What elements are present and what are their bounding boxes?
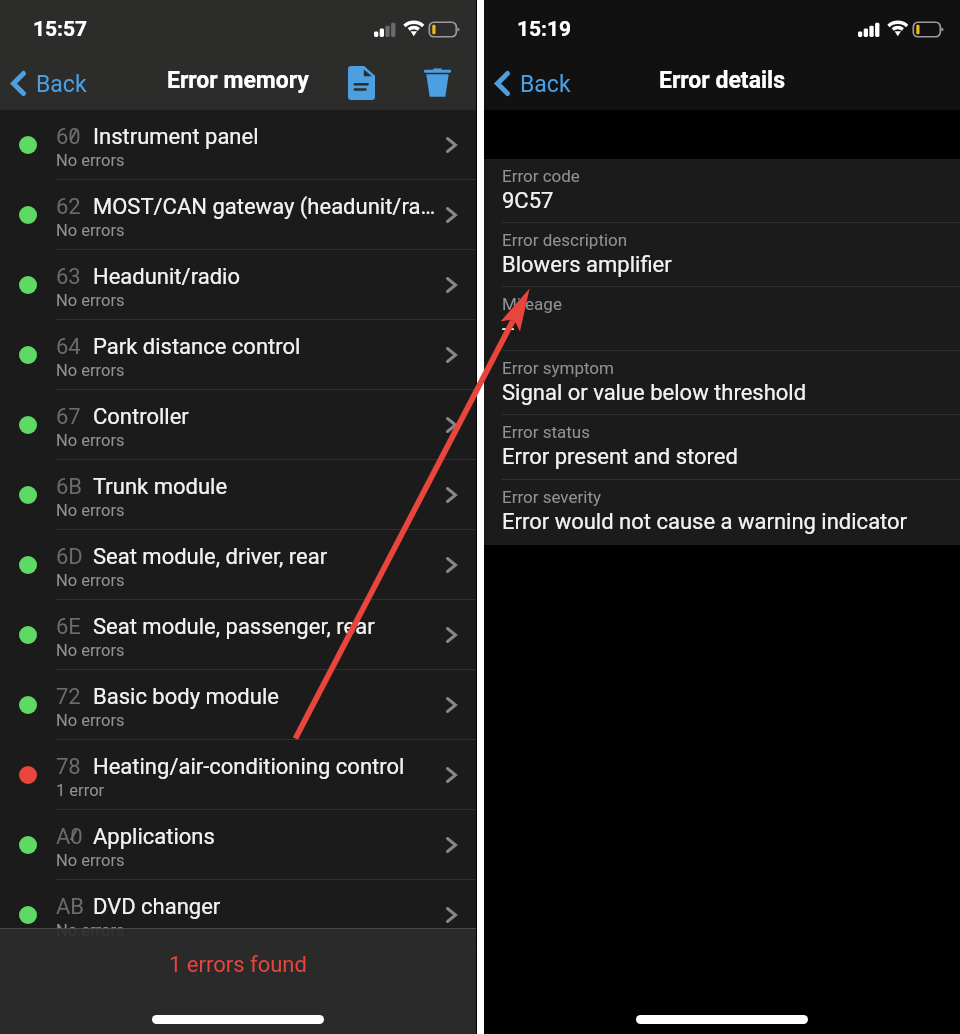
staticText: DVD changer <box>93 894 438 920</box>
staticText: No errors <box>56 921 125 940</box>
button[interactable]: 60 <box>0 110 476 180</box>
staticText: A0 <box>56 824 83 850</box>
button[interactable]: Error symptom <box>484 351 960 415</box>
button[interactable]: Export report <box>333 53 389 113</box>
staticText: Heating/air-conditioning control <box>93 754 438 780</box>
staticText: Seat module, passenger, rear <box>93 614 438 640</box>
staticText: 6B <box>56 474 83 500</box>
staticText: 62 <box>56 194 81 220</box>
staticText: Signal or value below threshold <box>502 380 807 406</box>
staticText: Basic body module <box>93 684 438 710</box>
button[interactable]: 64 <box>0 320 476 390</box>
staticText: 15:57 <box>33 17 88 42</box>
button[interactable]: Mileage <box>484 287 960 351</box>
staticText: Error symptom <box>502 358 614 378</box>
staticText: MOST/CAN gateway (headunit/ra… <box>93 194 438 220</box>
staticText: Error status <box>502 422 590 442</box>
staticText: 9C57 <box>502 188 554 214</box>
staticText: Park distance control <box>93 334 438 360</box>
staticText: Error details <box>659 67 786 94</box>
staticText: 67 <box>56 404 81 430</box>
button[interactable]: Back <box>484 61 585 100</box>
staticText: Error present and stored <box>502 444 738 470</box>
staticText: Seat module, driver, rear <box>93 544 438 570</box>
staticText: 6D <box>56 544 83 570</box>
staticText: No errors <box>56 431 125 450</box>
staticText: 78 <box>56 754 81 780</box>
staticText: AB <box>56 894 85 920</box>
staticText: -- <box>502 316 515 342</box>
button[interactable]: 67 <box>0 390 476 460</box>
staticText: Applications <box>93 824 438 850</box>
staticText: No errors <box>56 291 125 310</box>
staticText: Error severity <box>502 487 602 507</box>
button[interactable]: A0 <box>0 810 476 880</box>
staticText: Error description <box>502 230 628 250</box>
staticText: Error would not cause a warning indicato… <box>502 509 908 535</box>
staticText: Back <box>36 71 87 98</box>
staticText: 1 errors found <box>169 952 307 978</box>
staticText: No errors <box>56 571 125 590</box>
staticText: No errors <box>56 221 125 240</box>
staticText: 60 <box>56 124 81 150</box>
button[interactable]: 6E <box>0 600 476 670</box>
staticText: Instrument panel <box>93 124 438 150</box>
staticText: 1 error <box>56 781 105 800</box>
button[interactable]: Error description <box>484 223 960 287</box>
staticText: Controller <box>93 404 438 430</box>
staticText: Back <box>520 71 571 98</box>
button[interactable]: AB <box>0 880 476 950</box>
staticText: No errors <box>56 361 125 380</box>
button[interactable]: 63 <box>0 250 476 320</box>
staticText: Trunk module <box>93 474 438 500</box>
button[interactable]: Delete error memory <box>409 53 465 113</box>
staticText: Mileage <box>502 294 562 314</box>
button[interactable]: Error status <box>484 415 960 480</box>
button[interactable]: 72 <box>0 670 476 740</box>
staticText: No errors <box>56 501 125 520</box>
staticText: No errors <box>56 151 125 170</box>
staticText: 15:19 <box>517 17 572 42</box>
staticText: 64 <box>56 334 81 360</box>
staticText: Error memory <box>167 67 309 94</box>
button[interactable]: Error severity <box>484 480 960 545</box>
staticText: 6E <box>56 614 81 640</box>
button[interactable]: 6D <box>0 530 476 600</box>
staticText: Headunit/radio <box>93 264 438 290</box>
staticText: No errors <box>56 641 125 660</box>
staticText: 63 <box>56 264 81 290</box>
button[interactable]: 6B <box>0 460 476 530</box>
staticText: 72 <box>56 684 81 710</box>
button[interactable]: 62 <box>0 180 476 250</box>
button[interactable]: 78 <box>0 740 476 810</box>
button[interactable]: Back <box>0 61 101 100</box>
staticText: No errors <box>56 851 125 870</box>
staticText: Error code <box>502 166 580 186</box>
button[interactable]: Error code <box>484 159 960 223</box>
staticText: No errors <box>56 711 125 730</box>
staticText: Blowers amplifier <box>502 252 672 278</box>
